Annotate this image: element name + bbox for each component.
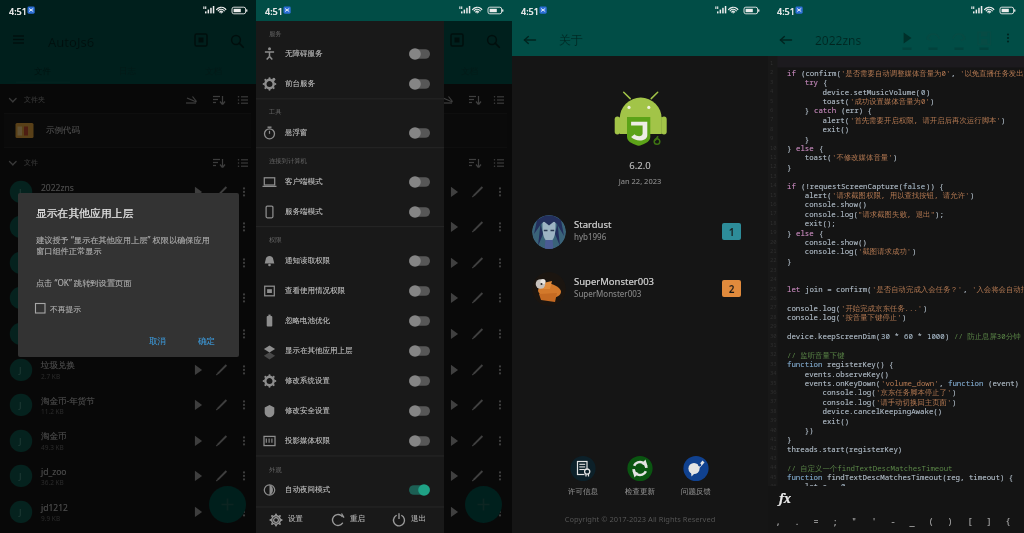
button[interactable]: 重启: [350, 514, 374, 527]
button[interactable]: 悬浮窗: [256, 118, 444, 148]
button[interactable]: More options for jd_cart: [233, 215, 255, 239]
button[interactable]: J: [256, 245, 512, 281]
button[interactable]: J: [256, 387, 512, 423]
button[interactable]: 通知读取权限: [256, 246, 444, 276]
button[interactable]: 前台服务: [256, 69, 444, 99]
button[interactable]: 文件夹: [256, 92, 512, 108]
button[interactable]: 无障碍服务: [256, 39, 444, 69]
button[interactable]: Run 2022zns: [187, 180, 210, 204]
button[interactable]: J: [0, 174, 256, 210]
button[interactable]: J: [0, 387, 256, 423]
button[interactable]: 设置: [288, 514, 312, 527]
button[interactable]: Run jd_cart: [443, 215, 466, 239]
button[interactable]: Delete: [187, 28, 213, 52]
button[interactable]: Edit 美团优惠: [466, 322, 489, 346]
button[interactable]: More options for 京东任务: [233, 286, 255, 310]
button[interactable]: ,: [770, 512, 786, 531]
button[interactable]: Back: [773, 27, 799, 53]
button[interactable]: Run jd1212: [187, 500, 210, 524]
button[interactable]: 查看使用情况权限: [256, 276, 444, 306]
button[interactable]: Delete: [443, 28, 469, 52]
button[interactable]: J: [256, 316, 512, 352]
button[interactable]: Edit jd1212: [210, 500, 233, 524]
button[interactable]: J: [256, 423, 512, 459]
button[interactable]: Edit 淘金币-年货节: [210, 393, 233, 417]
button[interactable]: J: [0, 494, 256, 530]
button[interactable]: J: [0, 316, 256, 352]
button[interactable]: .: [789, 512, 805, 531]
button[interactable]: =: [808, 512, 824, 531]
button[interactable]: New script: [209, 486, 246, 523]
button[interactable]: SuperMonster003: [512, 265, 768, 313]
button[interactable]: 示例代码: [4, 113, 251, 148]
button[interactable]: Run 淘金币-年货节: [187, 393, 210, 417]
button[interactable]: Edit 淘金币-年货节: [466, 393, 489, 417]
button[interactable]: 退出: [411, 514, 435, 527]
button[interactable]: Run script: [895, 26, 919, 52]
button[interactable]: 自动夜间模式: [256, 475, 444, 505]
button[interactable]: 示例代码: [260, 113, 507, 148]
button[interactable]: Open navigation menu: [262, 28, 286, 52]
button[interactable]: Edit 淘金币: [466, 429, 489, 453]
button[interactable]: More options for 美团优惠: [233, 322, 255, 346]
button[interactable]: Run 京东任务: [443, 286, 466, 310]
button[interactable]: Run jd1212: [443, 500, 466, 524]
button[interactable]: More options for 垃圾兑换: [489, 358, 511, 382]
button[interactable]: Run jd2022: [443, 251, 466, 275]
button[interactable]: J: [0, 209, 256, 245]
button[interactable]: Edit jd_cart: [466, 215, 489, 239]
button[interactable]: Run 美团优惠: [443, 322, 466, 346]
button[interactable]: 文档: [427, 60, 512, 84]
button[interactable]: J: [0, 245, 256, 281]
button[interactable]: Edit jd2022: [466, 251, 489, 275]
button[interactable]: Edit 2022zns: [466, 180, 489, 204]
button[interactable]: 忽略电池优化: [256, 306, 444, 336]
button[interactable]: 修改安全设置: [256, 396, 444, 426]
button[interactable]: 确定: [198, 336, 222, 351]
button[interactable]: J: [0, 458, 256, 494]
button[interactable]: ": [846, 512, 862, 531]
button[interactable]: J: [256, 494, 512, 530]
button[interactable]: Open navigation menu: [6, 28, 30, 52]
button[interactable]: Run 美团优惠: [187, 322, 210, 346]
button[interactable]: 投影媒体权限: [256, 426, 444, 456]
button[interactable]: 服务端模式: [256, 197, 444, 227]
button[interactable]: Run 垃圾兑换: [187, 358, 210, 382]
button[interactable]: 检查更新: [616, 452, 664, 502]
button[interactable]: -: [885, 512, 901, 531]
button[interactable]: 修改系统设置: [256, 366, 444, 396]
button[interactable]: ): [942, 512, 958, 531]
button[interactable]: Edit 淘金币: [210, 429, 233, 453]
button[interactable]: J: [256, 458, 512, 494]
button[interactable]: New script: [465, 486, 502, 523]
button[interactable]: Search: [480, 28, 506, 52]
button[interactable]: More options for jd2022: [489, 251, 511, 275]
button[interactable]: 客户端模式: [256, 167, 444, 197]
button[interactable]: 日志: [341, 60, 427, 84]
button[interactable]: 显示在其他应用上层: [256, 336, 444, 366]
button[interactable]: Run jd_cart: [187, 215, 210, 239]
button[interactable]: More options: [996, 26, 1020, 52]
button[interactable]: 不再提示: [35, 301, 113, 317]
button[interactable]: Edit 垃圾兑换: [210, 358, 233, 382]
button[interactable]: J: [256, 280, 512, 316]
button[interactable]: More options for 淘金币-年货节: [489, 393, 511, 417]
button[interactable]: J: [256, 174, 512, 210]
button[interactable]: More options for 淘金币: [233, 429, 255, 453]
button[interactable]: More options for 淘金币: [489, 429, 511, 453]
button[interactable]: More options for 淘金币-年货节: [233, 393, 255, 417]
button[interactable]: Edit 垃圾兑换: [466, 358, 489, 382]
button[interactable]: More options for jd2022: [233, 251, 255, 275]
button[interactable]: J: [0, 423, 256, 459]
button[interactable]: More options for jd1212: [489, 500, 511, 524]
button[interactable]: More options for 美团优惠: [489, 322, 511, 346]
button[interactable]: Edit jd_zoo: [210, 464, 233, 488]
